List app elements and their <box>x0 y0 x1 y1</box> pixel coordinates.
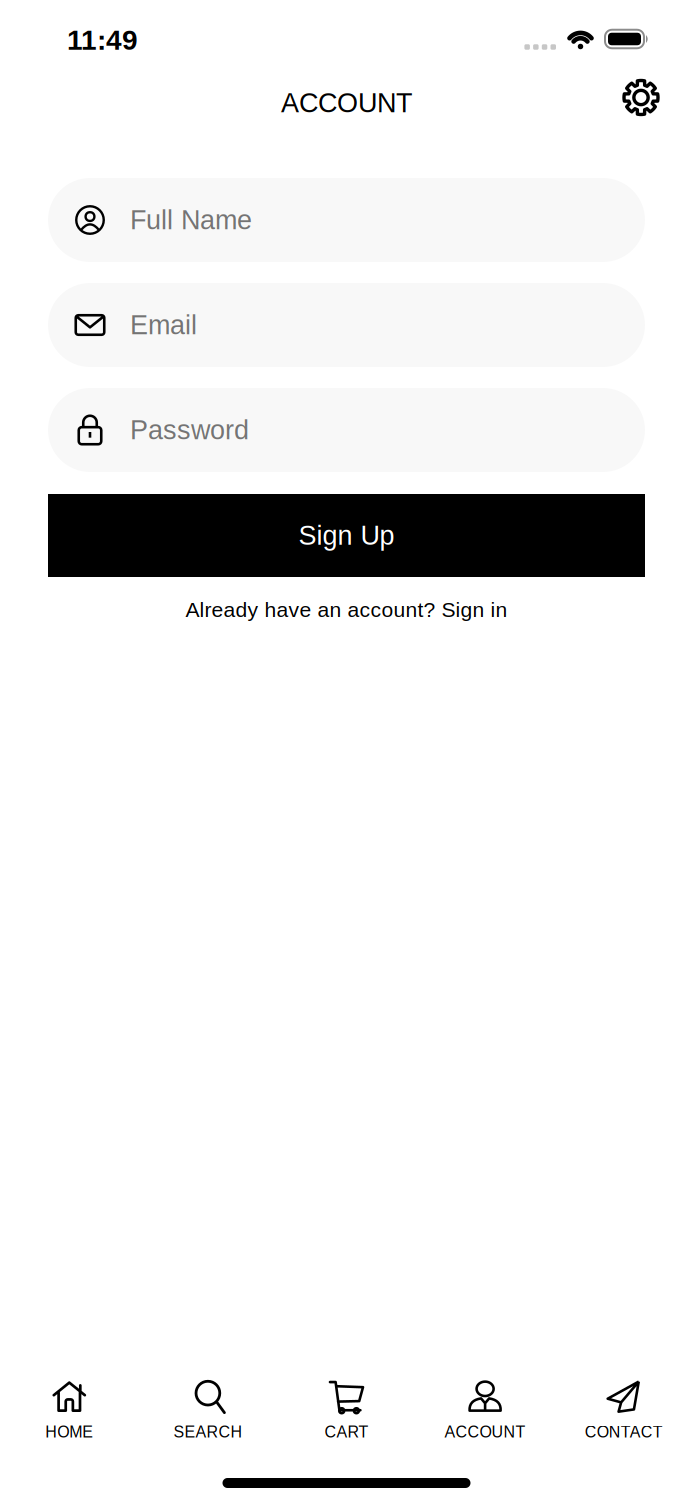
staticText: HOME <box>45 1423 93 1441</box>
staticText: SEARCH <box>173 1423 242 1441</box>
button[interactable]: ACCOUNT <box>416 1379 554 1441</box>
staticText: Password <box>130 415 249 445</box>
button[interactable]: Full Name <box>48 178 645 262</box>
button[interactable]: Sign Up <box>48 494 645 577</box>
button[interactable]: CART <box>277 1379 416 1441</box>
button[interactable]: SEARCH <box>139 1379 277 1441</box>
staticText: CART <box>324 1423 368 1441</box>
staticText: 11:49 <box>67 24 138 56</box>
staticText: CONTACT <box>585 1423 663 1441</box>
staticText: Email <box>130 310 197 340</box>
button[interactable]: Already have an account? Sign in <box>185 598 507 622</box>
staticText: Sign Up <box>298 520 394 551</box>
button[interactable]: HOME <box>0 1379 139 1441</box>
staticText: ACCOUNT <box>281 88 412 118</box>
staticText: ACCOUNT <box>445 1423 526 1441</box>
button[interactable]: Password <box>48 388 645 472</box>
button[interactable]: CONTACT <box>554 1379 693 1441</box>
staticText: Full Name <box>130 205 252 235</box>
staticText: Already have an account? Sign in <box>185 598 507 622</box>
button[interactable]: Email <box>48 283 645 367</box>
button[interactable]: Settings <box>624 80 658 114</box>
